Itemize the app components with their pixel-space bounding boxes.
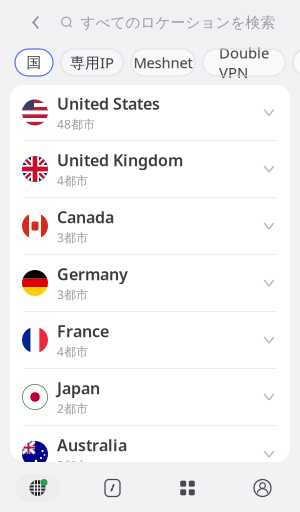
staticText: 2都市 — [57, 401, 88, 417]
staticText: United States — [57, 93, 160, 114]
staticText: Double VPN — [219, 43, 269, 82]
button[interactable]: 国 — [15, 49, 53, 76]
staticText: France — [57, 320, 109, 342]
button[interactable]: Threat Protection — [75, 464, 150, 512]
button[interactable]: Double VPN — [203, 49, 285, 76]
button[interactable]: Germany — [10, 255, 290, 311]
staticText: 48都市 — [57, 116, 95, 132]
button[interactable]: France — [10, 312, 290, 368]
button[interactable]: 専用IP — [61, 49, 123, 76]
button[interactable]: Meshnet — [131, 49, 195, 76]
staticText: 3都市 — [57, 230, 88, 246]
staticText: 4都市 — [57, 173, 88, 189]
button[interactable]: Japan — [10, 369, 290, 425]
staticText: Meshnet — [133, 53, 192, 72]
staticText: すべてのロケーションを検索 — [80, 13, 275, 31]
button[interactable]: Profile — [225, 464, 300, 512]
button[interactable]: Australia — [10, 426, 290, 482]
staticText: Australia — [57, 434, 127, 456]
button[interactable]: Apps — [150, 464, 225, 512]
staticText: Japan — [57, 377, 100, 399]
staticText: 専用IP — [70, 53, 114, 72]
staticText: 国 — [26, 53, 41, 71]
staticText: 5都市 — [57, 458, 88, 474]
button[interactable]: More filters — [293, 49, 300, 76]
staticText: United Kingdom — [57, 149, 183, 171]
staticText: 3都市 — [57, 287, 88, 303]
staticText: 4都市 — [57, 344, 88, 360]
staticText: Canada — [57, 206, 114, 228]
button[interactable]: すべてのロケーションを検索 — [48, 7, 292, 38]
staticText: Germany — [57, 263, 128, 285]
button[interactable]: Canada — [10, 198, 290, 254]
button[interactable]: United States — [10, 85, 290, 140]
button[interactable]: United Kingdom — [10, 141, 290, 197]
button[interactable]: Locations — [0, 464, 75, 512]
button[interactable]: Back — [22, 7, 48, 37]
